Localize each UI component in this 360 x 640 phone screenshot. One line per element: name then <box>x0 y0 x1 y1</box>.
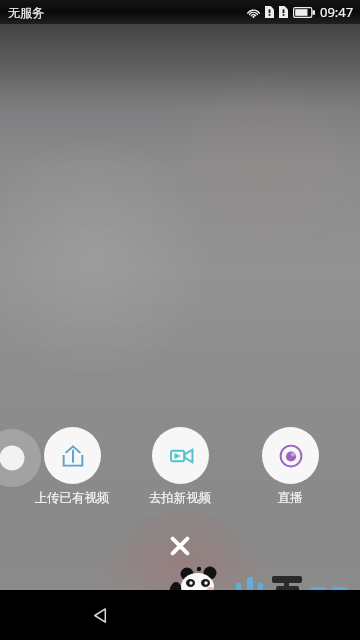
staticText: 上传已有视频 <box>27 490 117 506</box>
staticText: 直播 <box>245 490 335 506</box>
button[interactable]: 直播 <box>245 427 335 506</box>
staticText: 09:47 <box>320 3 354 21</box>
staticText: 去拍新视频 <box>135 490 225 506</box>
button[interactable]: 上传已有视频 <box>27 427 117 506</box>
button[interactable]: 返回 <box>80 595 120 635</box>
staticText: 无服务 <box>8 5 44 20</box>
button[interactable]: 关闭 <box>158 524 202 568</box>
button[interactable]: 去拍新视频 <box>135 427 225 506</box>
